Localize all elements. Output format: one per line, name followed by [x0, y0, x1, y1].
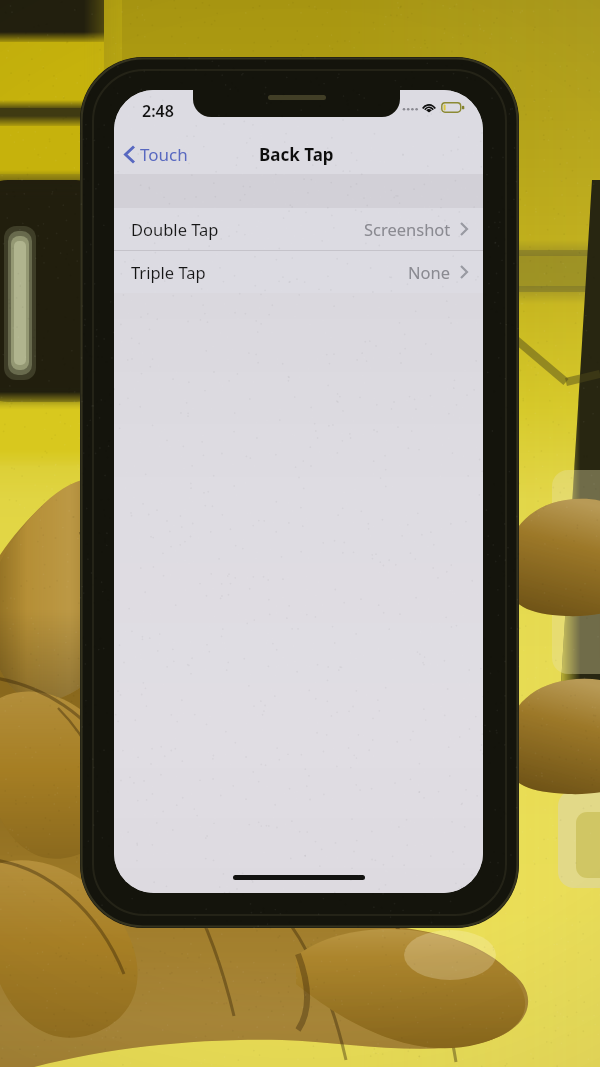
staticText: Screenshot: [364, 218, 451, 240]
staticText: None: [408, 261, 451, 283]
staticText: Back Tap: [259, 143, 334, 166]
staticText: Touch: [140, 143, 188, 166]
button[interactable]: Back to Touch: [114, 138, 202, 171]
staticText: Triple Tap: [131, 261, 206, 283]
staticText: Double Tap: [131, 218, 219, 240]
staticText: 2:48: [142, 100, 174, 122]
button[interactable]: Triple Tap: [114, 251, 483, 293]
button[interactable]: Double Tap: [114, 208, 483, 250]
button[interactable]: Home indicator: [233, 875, 365, 880]
